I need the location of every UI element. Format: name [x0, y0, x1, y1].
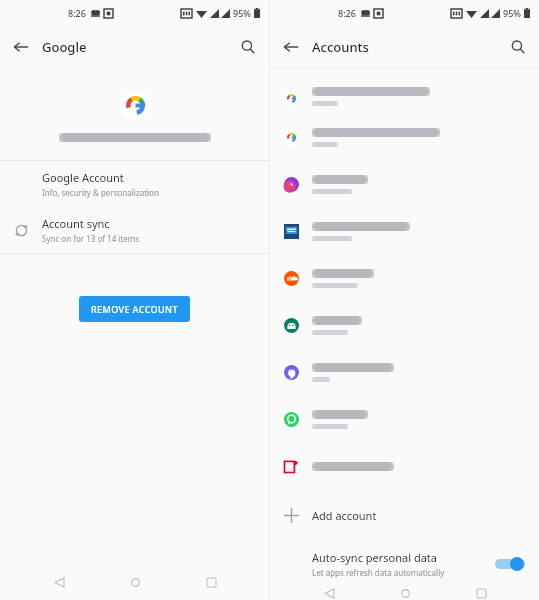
button[interactable]: Recents: [463, 586, 499, 600]
staticText: Accounts: [312, 38, 369, 56]
button[interactable]: Search: [497, 26, 539, 68]
button[interactable]: Home: [117, 564, 153, 600]
staticText: Account sync: [42, 216, 110, 231]
button[interactable]: [270, 349, 539, 396]
staticText: Info, security & personalization: [42, 187, 159, 198]
staticText: Google: [42, 38, 87, 56]
button[interactable]: Auto-sync personal data: [270, 542, 539, 586]
button[interactable]: [270, 396, 539, 443]
button[interactable]: [270, 443, 539, 490]
staticText: Sync on for 13 of 14 items: [42, 233, 140, 244]
button[interactable]: [270, 255, 539, 302]
button[interactable]: Search: [227, 26, 269, 68]
button[interactable]: [495, 557, 525, 571]
button[interactable]: [270, 208, 539, 255]
button[interactable]: [270, 302, 539, 349]
staticText: Google Account: [42, 170, 124, 185]
staticText: Auto-sync personal data: [312, 550, 437, 565]
button[interactable]: Back: [41, 564, 77, 600]
staticText: 8:26: [338, 7, 356, 19]
button[interactable]: Back: [270, 26, 312, 68]
staticText: Let apps refresh data automatically: [312, 567, 445, 578]
button[interactable]: Back: [311, 586, 347, 600]
staticText: REMOVE ACCOUNT: [91, 303, 178, 315]
button[interactable]: [270, 161, 539, 208]
button[interactable]: Back: [0, 26, 42, 68]
button[interactable]: Account sync: [0, 207, 269, 253]
button[interactable]: REMOVE ACCOUNT: [79, 296, 190, 322]
staticText: 95%: [233, 7, 251, 19]
button[interactable]: [270, 76, 539, 114]
button[interactable]: Home: [387, 586, 423, 600]
button[interactable]: [270, 114, 539, 161]
button[interactable]: Google Account: [0, 161, 269, 207]
button[interactable]: Add account: [270, 496, 539, 534]
button[interactable]: Recents: [193, 564, 229, 600]
staticText: Add account: [312, 508, 377, 523]
staticText: 95%: [503, 7, 521, 19]
staticText: 8:26: [68, 7, 86, 19]
